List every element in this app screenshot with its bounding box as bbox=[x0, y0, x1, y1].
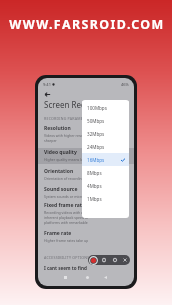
button[interactable]: Frame rate bbox=[44, 230, 88, 243]
staticText: Video quality bbox=[44, 149, 77, 156]
staticText: Orientation of recording scre bbox=[44, 176, 88, 181]
staticText: inherent playback speed on all bbox=[44, 215, 88, 220]
staticText: 100Mbps bbox=[87, 105, 107, 111]
button[interactable]: 1Mbps bbox=[82, 192, 129, 205]
button[interactable]: Video quality bbox=[44, 149, 88, 162]
button[interactable]: 16Mbps bbox=[82, 153, 129, 166]
staticText: 32Mbps bbox=[87, 131, 105, 137]
staticText: RECORDING PARAMETERS bbox=[44, 116, 92, 121]
button[interactable]: Back bbox=[101, 273, 109, 281]
button[interactable]: 8Mbps bbox=[82, 166, 129, 179]
staticText: ACCESSIBILITY OPTIONS bbox=[44, 255, 90, 260]
staticText: 50Mbps bbox=[87, 118, 105, 124]
staticText: Sound source bbox=[44, 186, 78, 193]
button[interactable]: Close bbox=[121, 256, 129, 264]
button[interactable]: 50Mbps bbox=[82, 114, 129, 127]
staticText: 8Mbps bbox=[87, 170, 102, 176]
button[interactable]: Recents bbox=[61, 273, 69, 281]
staticText: Frame rate bbox=[44, 230, 72, 237]
staticText: Screen Recorder bbox=[44, 99, 106, 110]
staticText: 46% bbox=[121, 82, 129, 87]
button[interactable]: Home bbox=[83, 273, 91, 281]
staticText: Higher quality means larger si bbox=[44, 157, 88, 162]
button[interactable]: Screenshot bbox=[100, 256, 108, 264]
staticText: 9:41 bbox=[43, 82, 51, 87]
button[interactable]: 32Mbps bbox=[82, 127, 129, 140]
staticText: I cant seem to find bbox=[44, 265, 87, 271]
staticText: Higher frame rates take up mo bbox=[44, 238, 88, 243]
staticText: 24Mbps bbox=[87, 144, 105, 150]
button[interactable]: Fixed frame rate bbox=[44, 202, 88, 225]
button[interactable]: Back bbox=[41, 88, 53, 100]
button[interactable]: 24Mbps bbox=[82, 140, 129, 153]
staticText: 4Mbps bbox=[87, 183, 102, 189]
button[interactable]: 4Mbps bbox=[82, 179, 129, 192]
button[interactable]: Orientation bbox=[44, 168, 88, 181]
staticText: sharper bbox=[44, 138, 57, 143]
button[interactable]: Record bbox=[89, 256, 98, 265]
staticText: Fixed frame rate bbox=[44, 202, 85, 209]
staticText: Orientation bbox=[44, 168, 74, 175]
staticText: Recording videos with a bbox=[44, 210, 84, 215]
staticText: 16Mbps bbox=[87, 157, 105, 163]
staticText: platforms with remarkable qu bbox=[44, 220, 88, 225]
button[interactable]: Sound source bbox=[44, 186, 88, 199]
button[interactable]: Pause bbox=[111, 256, 119, 264]
button[interactable]: Resolution bbox=[44, 125, 88, 143]
staticText: WWW.FARSROID.COM bbox=[1, 16, 172, 33]
button[interactable]: 100Mbps bbox=[82, 101, 129, 114]
staticText: 1Mbps bbox=[87, 196, 102, 202]
staticText: System sounds or microphone bbox=[44, 194, 88, 199]
staticText: Resolution bbox=[44, 125, 71, 132]
staticText: Videos with higher resolutio bbox=[44, 133, 88, 138]
